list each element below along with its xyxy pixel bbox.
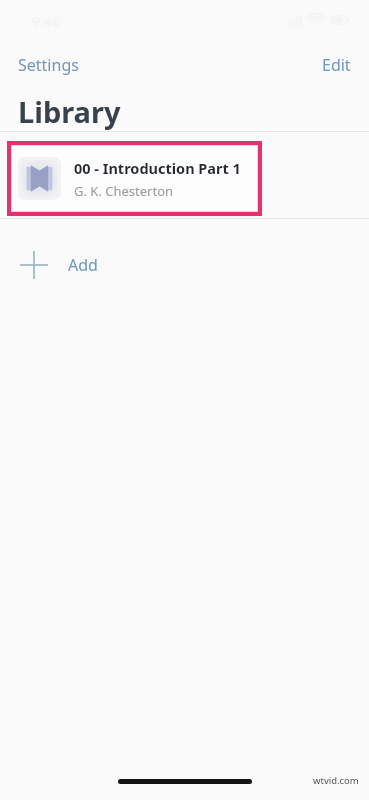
staticText: Edit [322,54,351,76]
staticText: Add [68,254,98,276]
button[interactable]: Add [0,240,369,290]
staticText: wtvid.com [313,774,359,787]
button[interactable]: 00 - Introduction Part 1 [7,141,262,216]
staticText: Library [18,92,121,131]
staticText: Settings [18,54,79,76]
button[interactable]: Edit [304,49,369,81]
other: Add [20,251,48,279]
button[interactable]: Settings [0,49,97,81]
staticText: 00 - Introduction Part 1 [74,158,241,178]
staticText: G. K. Chesterton [74,182,174,200]
